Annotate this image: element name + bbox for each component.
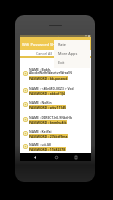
staticText: Cancel All bbox=[36, 51, 53, 56]
staticText: PASSWORD : 27kbtf9ma bbox=[29, 134, 68, 138]
button[interactable]: Back bbox=[30, 153, 40, 161]
button[interactable]: More options bbox=[82, 38, 91, 50]
staticText: PASSWORD : bnmhu4ik bbox=[29, 120, 67, 124]
staticText: NAME : <40nMD-0XZ3 > Vod bbox=[29, 86, 74, 90]
button[interactable]: Exit bbox=[54, 58, 90, 67]
staticText: NAME : uii-G8 bbox=[29, 142, 51, 146]
button[interactable]: NAME : <40nMD-0XZ3 > Vod bbox=[20, 83, 91, 98]
button[interactable]: NAME : DIRECT-h0-9NbtHb bbox=[20, 112, 91, 126]
staticText: Wifi Password Show bbox=[22, 42, 61, 48]
button[interactable]: NAME : KeiYai bbox=[20, 126, 91, 140]
staticText: NAME : NoKin bbox=[29, 100, 52, 104]
staticText: NAME : DIRECT-h0-9NbtHb bbox=[29, 115, 72, 119]
staticText: PASSWORD : abkof 1J4 bbox=[29, 91, 65, 95]
button[interactable]: NAME : Bgbh- AbcdeWzmWasrtvrWraz!N bbox=[20, 63, 91, 83]
staticText: PASSWORD : wbv11145 bbox=[29, 105, 66, 109]
button[interactable]: NAME : NoKin bbox=[20, 98, 91, 112]
button[interactable]: Home bbox=[51, 153, 61, 161]
staticText: Rate bbox=[58, 42, 67, 47]
staticText: PASSWORD : bb-passwd bbox=[29, 76, 68, 80]
button[interactable]: More Apps bbox=[54, 49, 90, 58]
staticText: Exit bbox=[58, 60, 65, 65]
button[interactable]: NAME : uii-G8 bbox=[20, 140, 91, 153]
staticText: More Apps bbox=[58, 51, 78, 56]
staticText: PASSWORD : 11k82378 bbox=[29, 147, 66, 151]
staticText: NAME : KeiYai bbox=[29, 129, 52, 133]
button[interactable]: Recents bbox=[71, 153, 81, 161]
staticText: NAME : Bgbh- AbcdeWzmWasrtvrWraz!N bbox=[29, 67, 72, 75]
button[interactable]: Cancel All bbox=[36, 51, 53, 56]
button[interactable]: Rate bbox=[54, 40, 90, 49]
